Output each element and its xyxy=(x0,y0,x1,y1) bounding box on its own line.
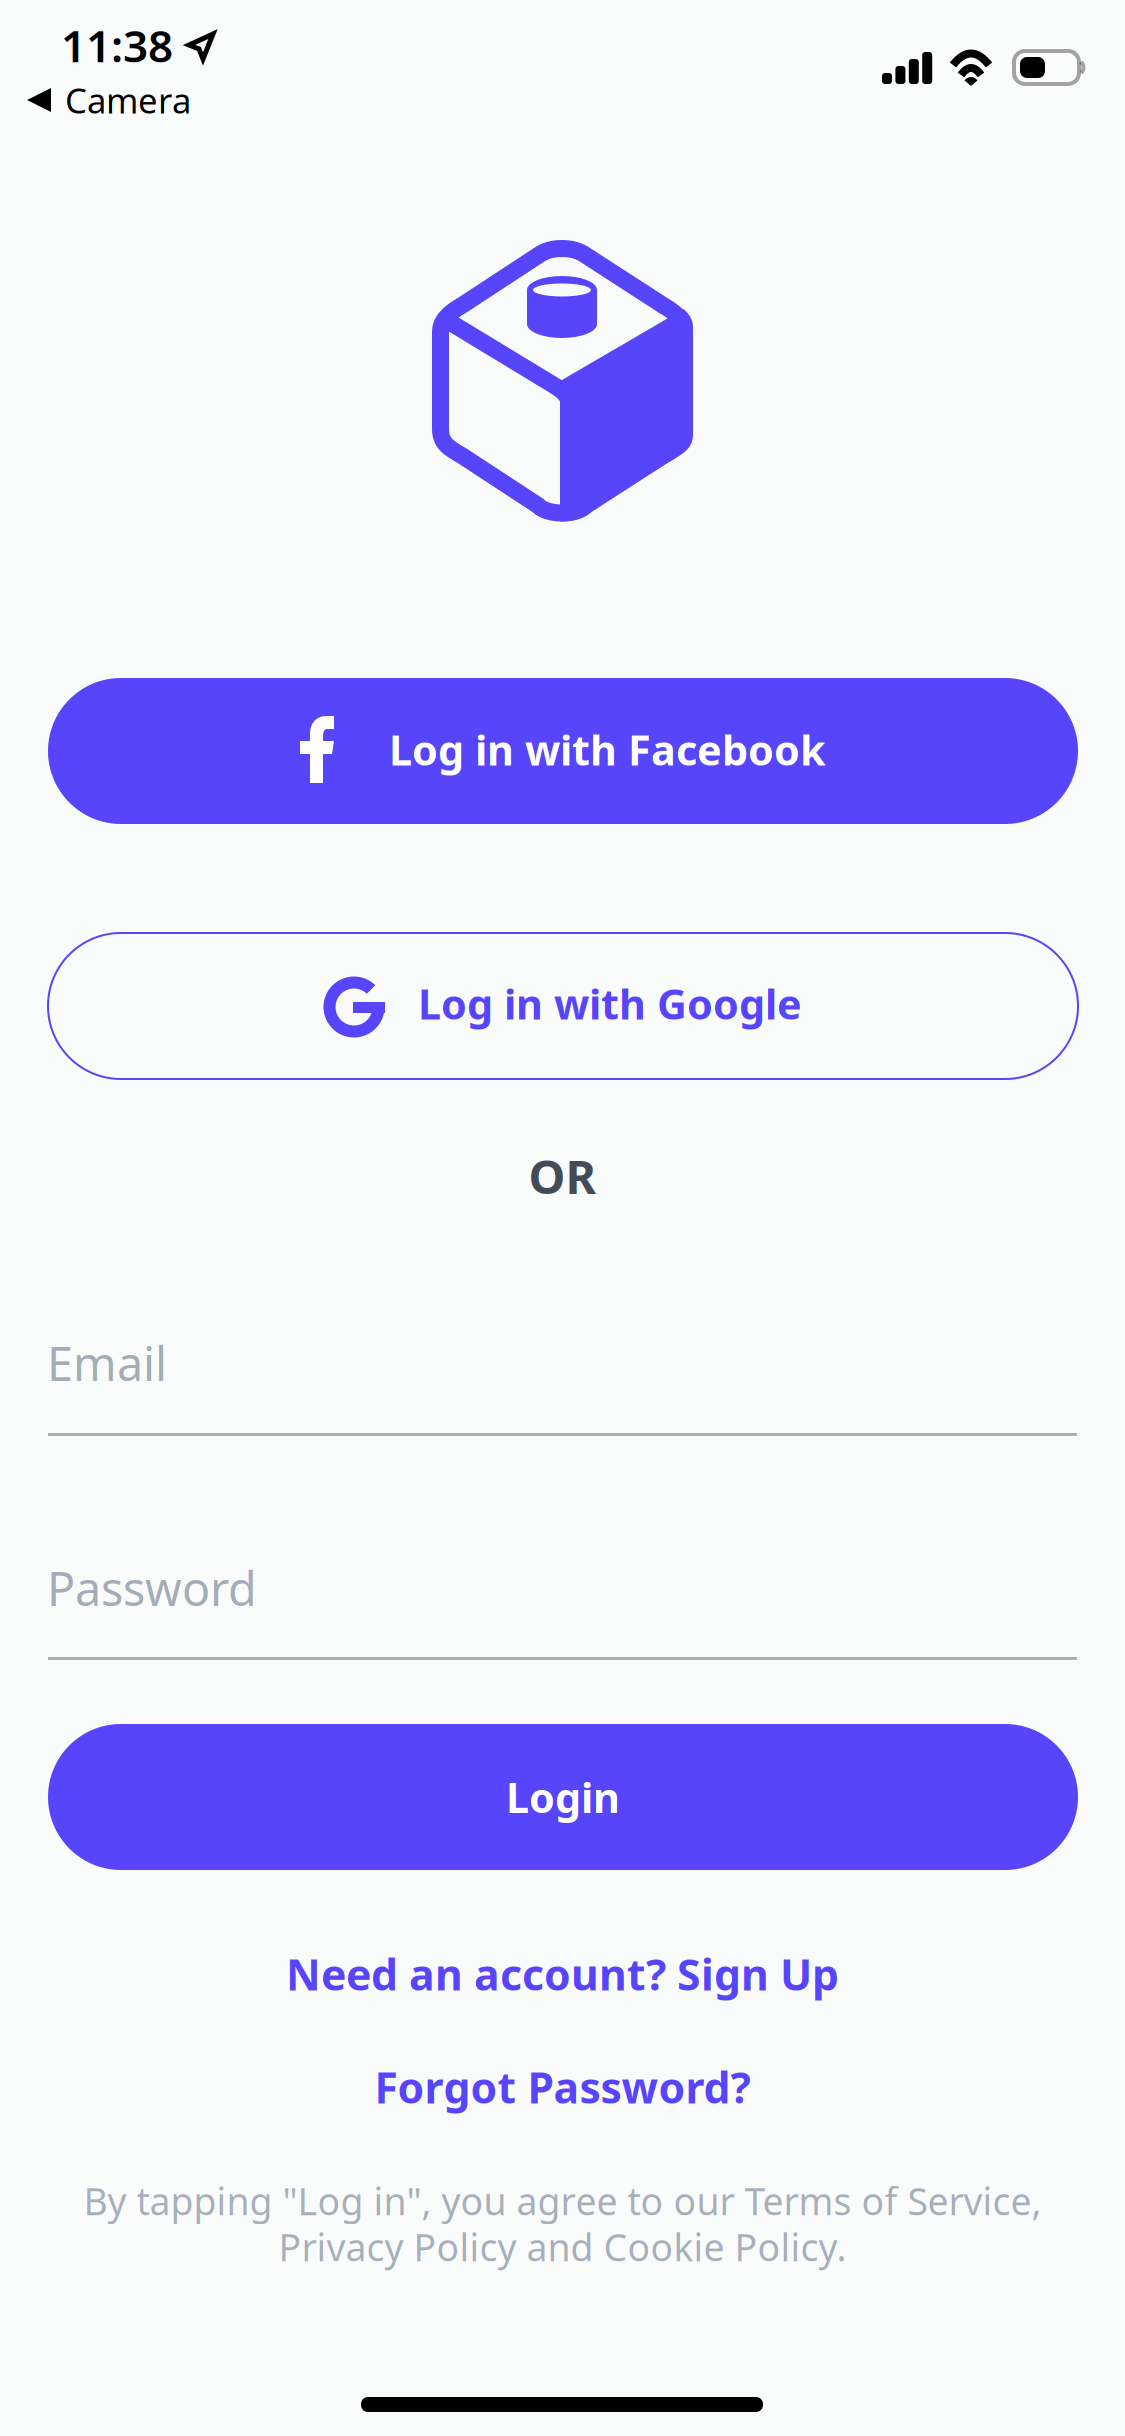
staticText: Privacy Policy and Cookie Policy. xyxy=(278,2222,846,2272)
button[interactable]: Login xyxy=(48,1724,1078,1870)
staticText: Login xyxy=(506,1770,620,1824)
staticText: Camera xyxy=(65,77,191,123)
button[interactable]: Camera xyxy=(27,80,191,120)
button[interactable]: Log in with Google xyxy=(48,933,1078,1079)
staticText: 11:38 xyxy=(61,16,173,74)
button[interactable]: Need an account? Sign Up xyxy=(0,1943,1125,2005)
staticText: Log in with Facebook xyxy=(389,722,826,777)
staticText: Log in with Google xyxy=(418,976,802,1031)
staticText: Email xyxy=(47,1332,167,1394)
staticText: Password xyxy=(47,1557,257,1619)
staticText: By tapping "Log in", you agree to our Te… xyxy=(83,2176,1041,2226)
button[interactable]: Log in with Facebook xyxy=(48,678,1078,824)
staticText: Forgot Password? xyxy=(374,2059,750,2115)
button[interactable]: Forgot Password? xyxy=(0,2056,1125,2118)
staticText: Need an account? Sign Up xyxy=(286,1946,839,2002)
staticText: OR xyxy=(528,1145,596,1207)
